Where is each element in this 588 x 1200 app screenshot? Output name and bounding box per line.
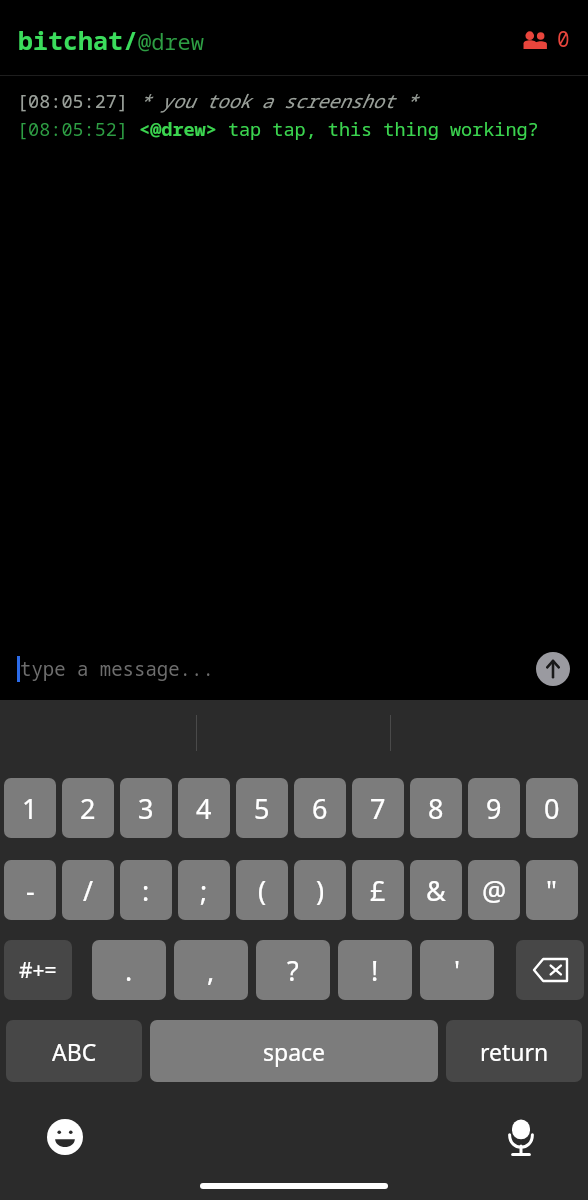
button[interactable]: 5: [236, 778, 288, 838]
staticText: 1: [22, 790, 38, 827]
button[interactable]: ,: [174, 940, 248, 1000]
staticText: ): [316, 872, 325, 909]
button[interactable]: 4: [178, 778, 230, 838]
button[interactable]: !: [338, 940, 412, 1000]
staticText: 7: [370, 790, 386, 827]
staticText: ': [454, 952, 461, 989]
staticText: 9: [486, 790, 502, 827]
staticText: ,: [207, 952, 215, 989]
staticText: space: [263, 1036, 326, 1067]
staticText: 8: [428, 790, 444, 827]
button[interactable]: @: [468, 860, 520, 920]
button[interactable]: 8: [410, 778, 462, 838]
button[interactable]: /: [62, 860, 114, 920]
button[interactable]: .: [92, 940, 166, 1000]
button[interactable]: People online: [519, 21, 574, 58]
staticText: &: [426, 872, 446, 909]
staticText: ": [546, 872, 558, 909]
button[interactable]: &: [410, 860, 462, 920]
staticText: [08:05:52] <@drew> tap tap, this thing w…: [17, 116, 539, 141]
staticText: 4: [196, 790, 212, 827]
button[interactable]: Voice input: [496, 1112, 546, 1162]
staticText: ?: [287, 952, 299, 989]
staticText: ;: [200, 872, 208, 909]
staticText: :: [142, 872, 150, 909]
button[interactable]: #+=: [4, 940, 72, 1000]
staticText: bitchat/@drew: [18, 23, 205, 57]
button[interactable]: space: [150, 1020, 438, 1082]
button[interactable]: ABC: [6, 1020, 142, 1082]
button[interactable]: Send: [536, 652, 570, 686]
button[interactable]: ): [294, 860, 346, 920]
staticText: 0: [544, 790, 560, 827]
staticText: 6: [312, 790, 328, 827]
staticText: @: [482, 872, 507, 909]
staticText: /: [83, 872, 94, 909]
button[interactable]: 1: [4, 778, 56, 838]
staticText: 2: [80, 790, 96, 827]
staticText: 5: [254, 790, 270, 827]
button[interactable]: 9: [468, 778, 520, 838]
button[interactable]: 6: [294, 778, 346, 838]
staticText: .: [125, 952, 133, 989]
staticText: !: [371, 952, 379, 989]
staticText: 3: [138, 790, 154, 827]
button[interactable]: Emoji: [40, 1112, 90, 1162]
button[interactable]: -: [4, 860, 56, 920]
staticText: #+=: [19, 956, 57, 985]
button[interactable]: :: [120, 860, 172, 920]
staticText: [08:05:27] * you took a screenshot *: [17, 88, 417, 113]
button[interactable]: return: [446, 1020, 582, 1082]
button[interactable]: ': [420, 940, 494, 1000]
button[interactable]: £: [352, 860, 404, 920]
button[interactable]: ": [526, 860, 578, 920]
button[interactable]: 0: [526, 778, 578, 838]
button[interactable]: type a message...: [20, 656, 214, 682]
button[interactable]: 2: [62, 778, 114, 838]
staticText: return: [480, 1036, 549, 1067]
staticText: (: [258, 872, 267, 909]
button[interactable]: (: [236, 860, 288, 920]
staticText: -: [26, 872, 35, 909]
button[interactable]: 3: [120, 778, 172, 838]
button[interactable]: ;: [178, 860, 230, 920]
button[interactable]: ?: [256, 940, 330, 1000]
button[interactable]: Backspace: [516, 940, 584, 1000]
staticText: ABC: [52, 1036, 97, 1067]
staticText: £: [370, 872, 386, 909]
staticText: 0: [557, 25, 570, 54]
button[interactable]: 7: [352, 778, 404, 838]
